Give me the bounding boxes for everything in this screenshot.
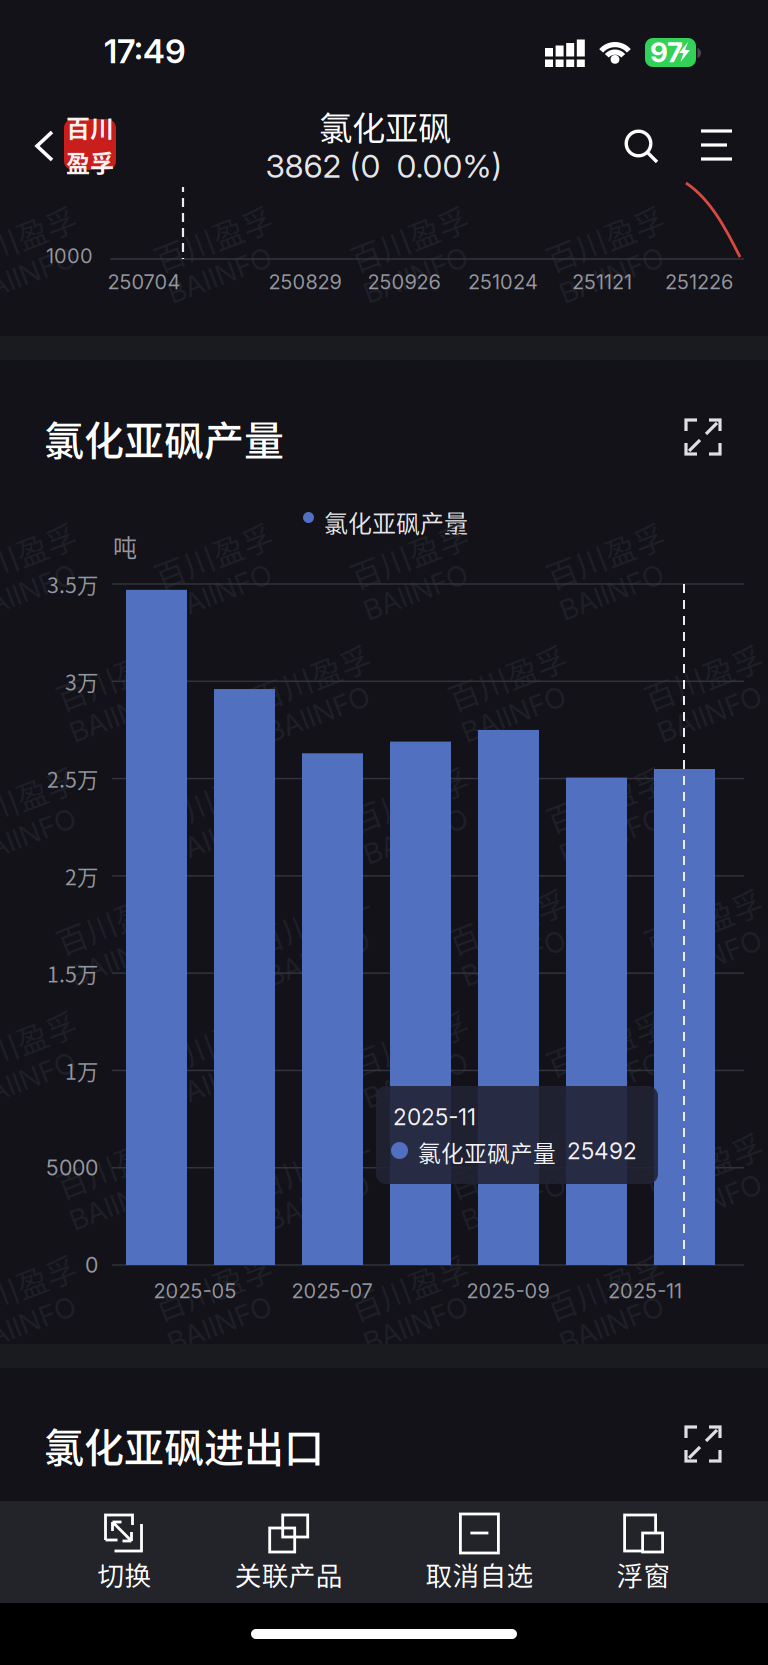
staticText: 吨 [113, 529, 137, 563]
staticText: 百川盈孚 [548, 210, 672, 254]
staticText: BAIINFO [0, 252, 69, 286]
staticText: 百川盈孚 [352, 1259, 476, 1303]
staticText: 氯化亚砜 [319, 102, 451, 150]
button[interactable]: 全屏 [684, 1425, 724, 1465]
staticText: 百川盈孚 [450, 893, 574, 937]
staticText: 250829 [268, 270, 341, 294]
staticText: BAIINFO [646, 1179, 755, 1213]
staticText: BAIINFO [156, 1057, 265, 1091]
staticText: BAIINFO [548, 813, 657, 847]
staticText: 2025-07 [291, 1279, 372, 1303]
staticText: 切换 [97, 1555, 151, 1593]
staticText: 0 [85, 1252, 98, 1278]
staticText: BAIINFO [646, 935, 755, 969]
staticText: 2.5万 [47, 763, 98, 794]
staticText: 百川盈孚 [0, 527, 84, 571]
staticText: 百川盈孚 [58, 893, 182, 937]
staticText: 氯化亚砜产量 [44, 409, 284, 467]
staticText: 1.5万 [47, 958, 98, 989]
staticText: 1万 [65, 1055, 98, 1086]
staticText: 2025-05 [153, 1279, 236, 1303]
staticText: 百川盈孚 [450, 1137, 574, 1181]
staticText: BAIINFO [156, 252, 265, 286]
staticText: 百川盈孚 [156, 1015, 280, 1059]
staticText: 百川盈孚 [548, 527, 672, 571]
staticText: BAIINFO [0, 1301, 69, 1335]
staticText: BAIINFO [548, 1057, 657, 1091]
staticText: BAIINFO [0, 1057, 69, 1091]
staticText: BAIINFO [548, 1301, 657, 1335]
button[interactable]: 浮窗 [574, 1501, 714, 1603]
staticText: 百川盈孚 [254, 893, 378, 937]
staticText: BAIINFO [352, 569, 461, 603]
staticText: BAIINFO [254, 1179, 363, 1213]
staticText: 氯化亚砜产量 [324, 505, 468, 539]
staticText: BAIINFO [548, 569, 657, 603]
staticText: 氯化亚砜产量 [418, 1136, 556, 1168]
button[interactable]: 取消自选 [409, 1501, 549, 1603]
staticText: 百川盈孚 [352, 1015, 476, 1059]
staticText: 百川盈孚 [156, 771, 280, 815]
staticText: BAIINFO [450, 691, 559, 725]
staticText: 2025-09 [466, 1279, 549, 1303]
button[interactable]: 关联产品 [219, 1501, 359, 1603]
staticText: 百川盈孚 [58, 649, 182, 693]
staticText: 百川盈孚 [646, 649, 768, 693]
staticText: BAIINFO [548, 252, 657, 286]
staticText: 3万 [65, 666, 98, 697]
staticText: 百川 [66, 110, 114, 144]
staticText: 250926 [367, 270, 440, 294]
staticText: 251226 [665, 270, 733, 294]
staticText: BAIINFO [58, 1179, 167, 1213]
staticText: 百川盈孚 [450, 649, 574, 693]
staticText: BAIINFO [450, 1179, 559, 1213]
staticText: 关联产品 [235, 1555, 343, 1593]
staticText: 氯化亚砜进出口 [44, 1416, 324, 1474]
staticText: 251121 [572, 270, 632, 294]
staticText: BAIINFO [156, 813, 265, 847]
staticText: 1000 [46, 244, 93, 268]
staticText: 5000 [46, 1155, 98, 1181]
staticText: 百川盈孚 [156, 527, 280, 571]
button[interactable]: 切换 [54, 1501, 194, 1603]
staticText: 2025-11 [393, 1103, 476, 1131]
staticText: 97 [650, 35, 683, 69]
staticText: 百川盈孚 [646, 1137, 768, 1181]
staticText: BAIINFO [352, 1301, 461, 1335]
staticText: 3862 (0 0.00%) [265, 147, 502, 185]
staticText: 百川盈孚 [254, 1137, 378, 1181]
staticText: 盈孚 [66, 144, 114, 179]
staticText: 25492 [567, 1137, 637, 1165]
staticText: 百川盈孚 [548, 1015, 672, 1059]
staticText: BAIINFO [0, 569, 69, 603]
staticText: 251024 [468, 270, 538, 294]
staticText: BAIINFO [156, 1301, 265, 1335]
staticText: BAIINFO [254, 935, 363, 969]
staticText: BAIINFO [352, 1057, 461, 1091]
staticText: 取消自选 [425, 1555, 533, 1593]
staticText: 百川盈孚 [58, 1137, 182, 1181]
staticText: 百川盈孚 [0, 1015, 84, 1059]
staticText: BAIINFO [254, 691, 363, 725]
staticText: BAIINFO [156, 569, 265, 603]
staticText: 浮窗 [617, 1555, 671, 1593]
staticText: 2025-11 [608, 1279, 682, 1303]
button[interactable]: 返回 [10, 102, 68, 184]
button[interactable]: 菜单 [682, 101, 762, 175]
staticText: 250704 [107, 270, 180, 294]
staticText: BAIINFO [352, 252, 461, 286]
button[interactable]: 全屏 [684, 418, 724, 458]
staticText: 百川盈孚 [0, 771, 84, 815]
staticText: 百川盈孚 [156, 1259, 280, 1303]
staticText: BAIINFO [58, 935, 167, 969]
staticText: 2万 [65, 860, 98, 891]
staticText: 百川盈孚 [548, 771, 672, 815]
staticText: 百川盈孚 [254, 649, 378, 693]
staticText: 百川盈孚 [548, 1259, 672, 1303]
staticText: 百川盈孚 [0, 210, 84, 254]
staticText: BAIINFO [450, 935, 559, 969]
button[interactable]: 搜索 [602, 103, 682, 177]
staticText: BAIINFO [58, 691, 167, 725]
button[interactable]: 百川盈孚 [64, 119, 116, 170]
staticText: 百川盈孚 [646, 893, 768, 937]
